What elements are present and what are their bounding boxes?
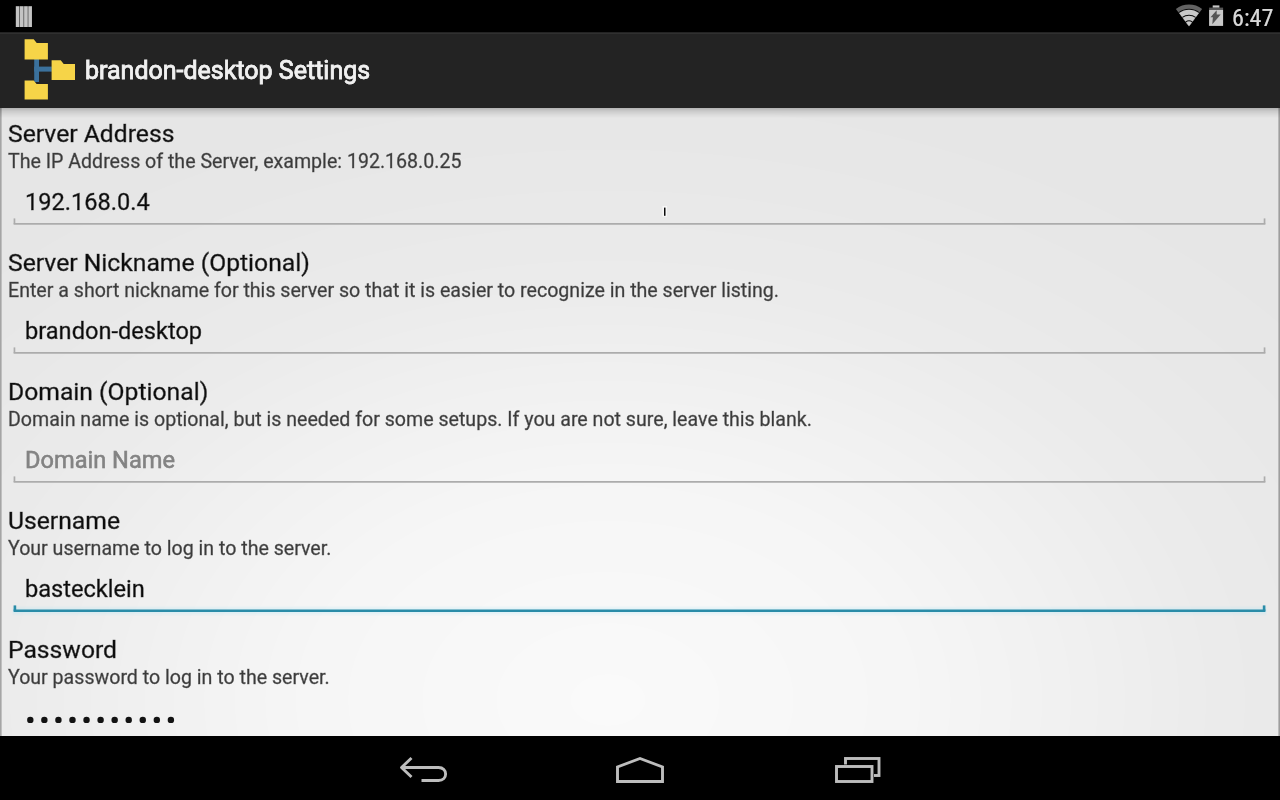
staticText: brandon-desktop [25,317,203,345]
staticText: Your username to log in to the server. [8,537,332,560]
staticText: Your password to log in to the server. [8,666,330,689]
staticText: Your username to log in to the server. [8,537,332,560]
staticText: brandon-desktop Settings [85,56,371,85]
staticText: Domain Name [25,446,175,474]
staticText: Password [8,635,118,664]
button[interactable]: Recent apps [809,738,907,800]
button[interactable]: Home [591,738,689,800]
button[interactable]: Password [0,624,1280,752]
staticText: Server Nickname (Optional) [8,248,310,277]
staticText: 192.168.0.4 [25,188,150,216]
staticText: Domain name is optional, but is needed f… [8,408,812,431]
button[interactable]: Username [0,495,1280,623]
button[interactable]: Domain (Optional) [0,366,1280,494]
button[interactable]: Server Address [0,108,1280,236]
button[interactable]: Back [375,739,473,800]
staticText: The IP Address of the Server, example: 1… [8,150,462,173]
staticText: Server Nickname (Optional) [8,248,310,277]
staticText: The IP Address of the Server, example: 1… [8,150,462,173]
staticText: Server Address [8,119,175,148]
staticText: 192.168.0.4 [25,188,150,216]
button[interactable]: Server Nickname (Optional) [0,237,1280,365]
staticText: Domain Name [25,446,175,474]
staticText: brandon-desktop Settings [85,56,371,85]
staticText: Domain (Optional) [8,377,209,406]
staticText: Domain name is optional, but is needed f… [8,408,812,431]
staticText: Your password to log in to the server. [8,666,330,689]
staticText: bastecklein [25,575,145,603]
staticText: Username [8,506,121,535]
staticText: Enter a short nickname for this server s… [8,279,779,302]
staticText: Enter a short nickname for this server s… [8,279,779,302]
staticText: Password [8,635,118,664]
staticText: brandon-desktop [25,317,203,345]
staticText: bastecklein [25,575,145,603]
staticText: Domain (Optional) [8,377,209,406]
staticText: 6:47 [1232,4,1274,32]
staticText: Username [8,506,121,535]
staticText: Server Address [8,119,175,148]
